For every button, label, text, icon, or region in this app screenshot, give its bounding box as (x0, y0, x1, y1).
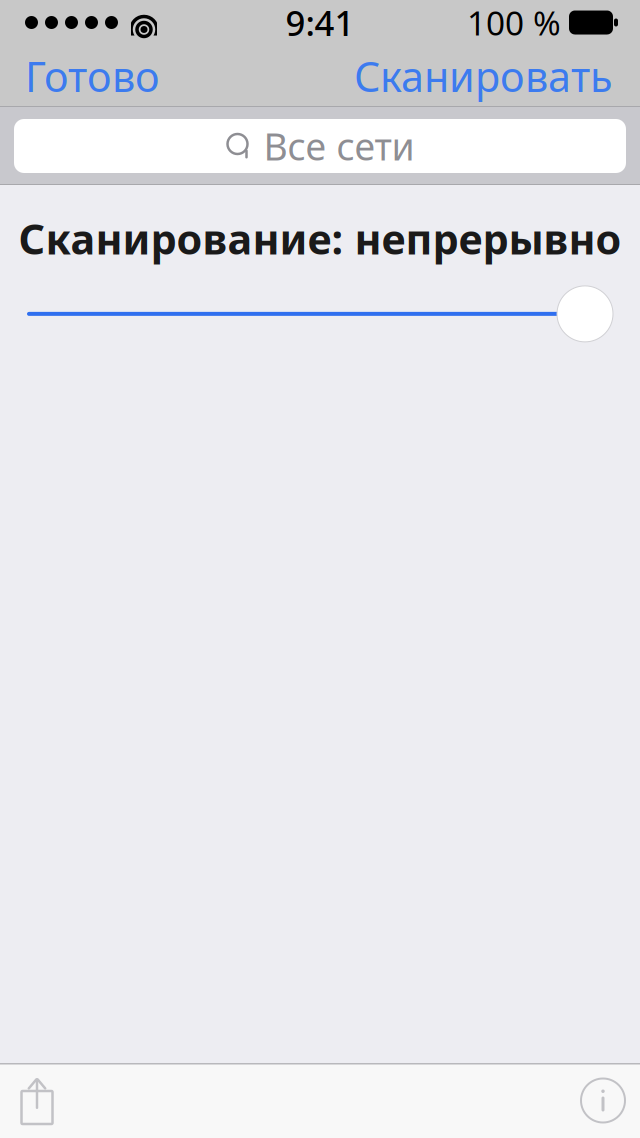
staticText: Сканирование: непрерывно (18, 211, 621, 266)
staticText: Все сети (263, 121, 414, 171)
button[interactable]: Сканировать (354, 37, 640, 115)
button[interactable]: Share (0, 1063, 74, 1138)
staticText: 100 % (467, 0, 561, 45)
staticText: Готово (25, 49, 160, 103)
button[interactable]: Info (566, 1063, 640, 1138)
button[interactable]: Готово (0, 37, 160, 115)
button[interactable]: Все сети (14, 119, 626, 173)
staticText: Сканировать (354, 49, 613, 103)
staticText: 9:41 (285, 0, 354, 45)
